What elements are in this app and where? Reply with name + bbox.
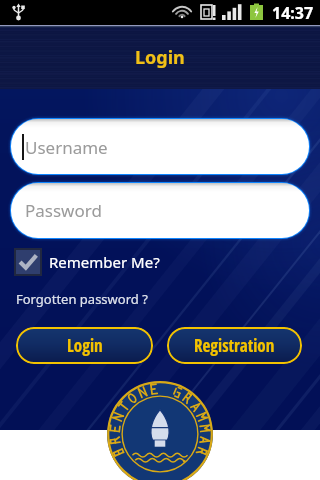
button[interactable]: Remember Me? <box>14 248 160 276</box>
staticText: Remember Me? <box>49 252 160 272</box>
staticText: Login <box>135 45 185 70</box>
staticText: 14:37 <box>272 2 314 24</box>
staticText: Password <box>25 199 102 222</box>
button[interactable]: Registration <box>167 327 302 364</box>
staticText: Username <box>25 136 108 159</box>
button[interactable]: Login <box>16 327 153 364</box>
staticText: Login <box>67 334 103 357</box>
button[interactable]: Forgotten password ? <box>16 290 148 308</box>
button[interactable]: Password <box>11 183 309 238</box>
staticText: Registration <box>194 334 275 357</box>
button[interactable]: Username <box>11 119 309 174</box>
